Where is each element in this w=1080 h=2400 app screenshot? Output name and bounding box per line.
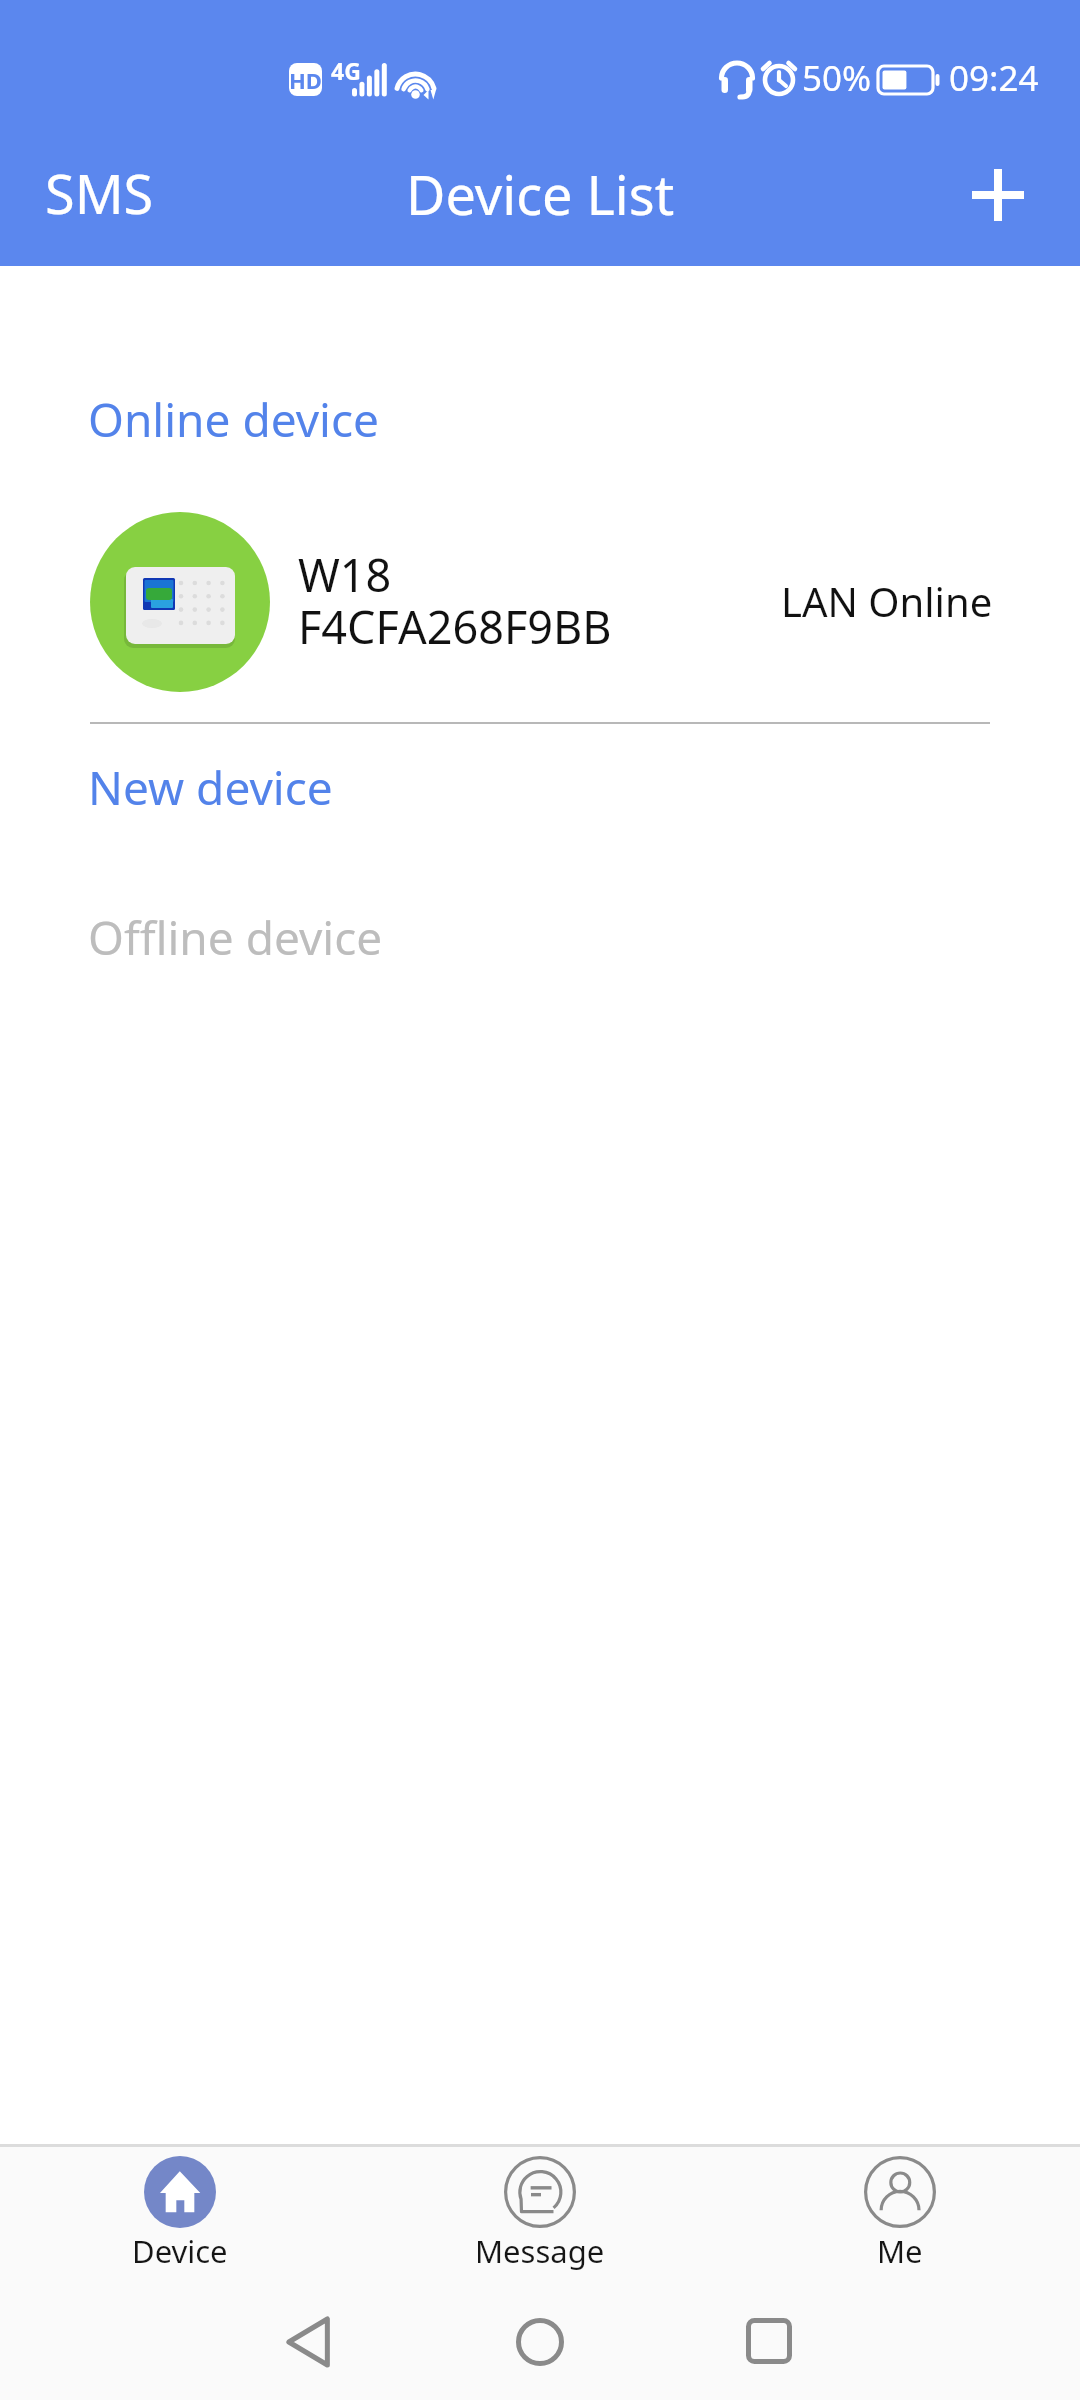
button[interactable]: Device [0,2147,360,2272]
button[interactable]: Back [253,2287,363,2397]
button[interactable]: Me [720,2147,1080,2272]
staticText: HD [289,65,322,95]
button[interactable]: Recents [714,2286,824,2396]
button[interactable]: SMS [15,140,184,246]
staticText: 4G [331,55,361,86]
button[interactable]: W18 [0,500,1080,705]
staticText: Online device [88,388,379,451]
staticText: Device List [406,157,675,231]
staticText: LAN Online [781,574,993,628]
staticText: Message [475,2230,605,2272]
staticText: New device [88,756,333,819]
button[interactable]: Message [360,2147,720,2272]
staticText: W18 [298,544,392,605]
staticText: 50% [802,54,872,102]
staticText: Offline device [88,906,383,969]
staticText: Me [877,2230,923,2272]
button[interactable]: Add device [955,152,1041,238]
staticText: F4CFA268F9BB [298,596,612,657]
button[interactable]: Home [485,2287,595,2397]
staticText: 09:24 [949,54,1039,102]
staticText: Device [132,2230,228,2272]
staticText: SMS [45,156,154,230]
